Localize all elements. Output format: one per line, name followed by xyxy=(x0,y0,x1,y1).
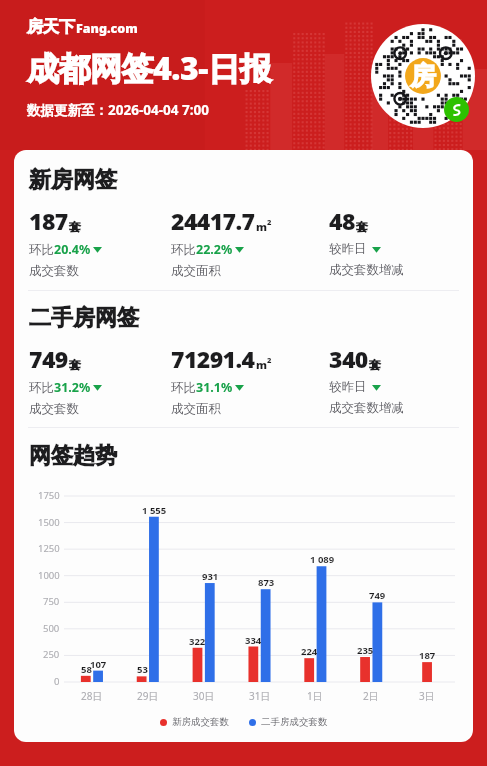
staticText: 新房成交套数 xyxy=(172,716,229,728)
button[interactable]: 749 xyxy=(29,343,171,417)
staticText: 749 xyxy=(369,589,386,602)
staticText: 29日 xyxy=(137,689,159,703)
staticText: 成交套数 xyxy=(29,401,79,417)
staticText: 30日 xyxy=(193,689,215,703)
button[interactable]: 340 xyxy=(329,343,463,416)
staticText: 873 xyxy=(258,576,275,589)
staticText: 931 xyxy=(202,570,219,583)
staticText: 0 xyxy=(54,675,60,688)
staticText: 107 xyxy=(90,658,107,671)
staticText: 网签趋势 xyxy=(29,442,117,470)
button[interactable]: 新房成交套数 xyxy=(160,716,229,728)
staticText: 1日 xyxy=(307,689,323,703)
staticText: 环比 xyxy=(29,242,54,258)
staticText: 1500 xyxy=(38,516,60,529)
staticText: 322 xyxy=(189,635,206,648)
staticText: 187 xyxy=(419,649,436,662)
staticText: 187 xyxy=(29,205,68,236)
staticText: 新房网签 xyxy=(29,166,117,194)
staticText: 套 xyxy=(69,219,81,234)
staticText: Fang.com xyxy=(76,20,138,37)
staticText: 58 xyxy=(81,663,92,676)
staticText: 235 xyxy=(357,644,374,657)
staticText: 1 555 xyxy=(142,504,167,517)
staticText: 成交套数 xyxy=(29,263,79,279)
staticText: 套 xyxy=(356,219,368,234)
staticText: 套 xyxy=(69,357,81,372)
staticText: m xyxy=(256,219,267,234)
staticText: 71291.4 xyxy=(171,343,255,374)
staticText: 500 xyxy=(43,622,60,635)
staticText: 31.1% xyxy=(196,379,233,396)
staticText: 750 xyxy=(43,595,60,608)
staticText: 3日 xyxy=(419,689,435,703)
staticText: 334 xyxy=(245,634,262,647)
staticText: 成都网签4.3-日报 xyxy=(27,46,271,90)
staticText: 成交面积 xyxy=(171,401,221,417)
staticText: 成交套数增减 xyxy=(329,262,404,278)
staticText: 53 xyxy=(137,663,148,676)
staticText: 套 xyxy=(369,357,381,372)
staticText: 环比 xyxy=(171,380,196,396)
staticText: 1 089 xyxy=(310,553,335,566)
staticText: 房天下 xyxy=(27,17,75,37)
staticText: 环比 xyxy=(171,242,196,258)
button[interactable]: 187 xyxy=(29,205,171,279)
staticText: 2日 xyxy=(363,689,379,703)
staticText: 成交面积 xyxy=(171,263,221,279)
staticText: 22.2% xyxy=(196,241,233,258)
staticText: 1750 xyxy=(38,489,60,502)
button[interactable]: 48 xyxy=(329,205,463,278)
staticText: 2 xyxy=(267,217,272,227)
staticText: 340 xyxy=(329,343,368,374)
staticText: 1000 xyxy=(38,569,60,582)
staticText: 二手房网签 xyxy=(29,304,139,332)
staticText: 31日 xyxy=(249,689,271,703)
staticText: 环比 xyxy=(29,380,54,396)
staticText: 2 xyxy=(267,355,272,365)
button[interactable]: 扫码关注房天下公众号 xyxy=(371,24,475,128)
staticText: 20.4% xyxy=(54,241,91,258)
staticText: 250 xyxy=(43,648,60,661)
staticText: m xyxy=(256,357,267,372)
button[interactable]: 71291.4 xyxy=(171,343,329,417)
staticText: 48 xyxy=(329,205,355,236)
button[interactable]: 二手房成交套数 xyxy=(249,716,328,728)
staticText: 31.2% xyxy=(54,379,91,396)
button[interactable]: 24417.7 xyxy=(171,205,329,279)
staticText: 较昨日 xyxy=(329,241,367,257)
staticText: 成交套数增减 xyxy=(329,400,404,416)
staticText: 28日 xyxy=(81,689,103,703)
staticText: 数据更新至：2026-04-04 7:00 xyxy=(27,101,209,119)
staticText: 1250 xyxy=(38,542,60,555)
staticText: 较昨日 xyxy=(329,379,367,395)
staticText: 224 xyxy=(301,645,318,658)
staticText: 二手房成交套数 xyxy=(261,716,328,728)
staticText: 749 xyxy=(29,343,68,374)
staticText: 房 xyxy=(410,60,436,93)
staticText: 24417.7 xyxy=(171,205,255,236)
